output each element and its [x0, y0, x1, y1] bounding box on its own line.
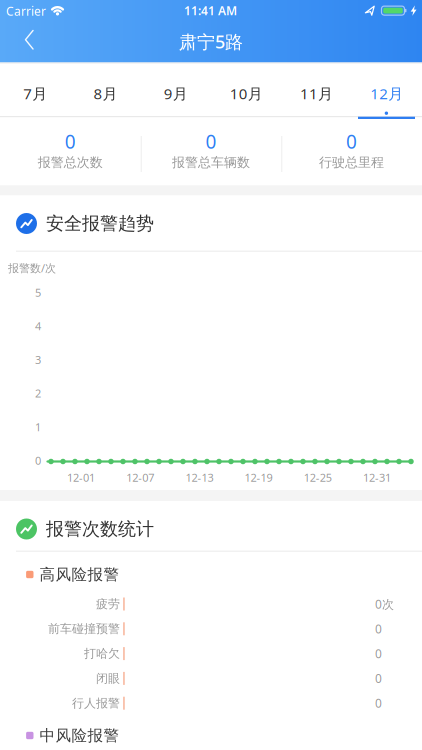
staticText: 报警总次数: [38, 154, 103, 171]
staticText: 行人报警: [72, 696, 120, 711]
staticText: 12-31: [363, 470, 391, 485]
staticText: 1: [35, 419, 41, 434]
button[interactable]: 12月: [352, 68, 422, 118]
staticText: 12-25: [304, 470, 332, 485]
staticText: 中风险报警: [39, 726, 119, 745]
staticText: 报警数/次: [8, 260, 56, 275]
staticText: 4: [35, 319, 41, 334]
staticText: 0: [205, 128, 216, 154]
staticText: 0: [65, 128, 76, 154]
staticText: 12-13: [185, 470, 213, 485]
staticText: 报警次数统计: [46, 518, 154, 540]
staticText: 肃宁5路: [179, 29, 243, 54]
staticText: 9月: [164, 83, 188, 104]
button[interactable]: 8月: [70, 68, 141, 118]
staticText: 0: [375, 695, 382, 711]
staticText: 0: [346, 128, 357, 154]
staticText: 5: [35, 285, 41, 300]
staticText: 10月: [230, 83, 263, 104]
staticText: 0次: [375, 596, 394, 612]
staticText: 12-01: [67, 470, 95, 485]
staticText: 0: [375, 645, 382, 662]
staticText: 高风险报警: [39, 565, 119, 584]
staticText: 11月: [300, 83, 333, 104]
staticText: 8月: [93, 83, 117, 104]
button[interactable]: 10月: [211, 68, 281, 118]
staticText: 闭眼: [96, 671, 120, 686]
staticText: 7月: [23, 83, 47, 104]
staticText: 12-07: [126, 470, 154, 485]
staticText: 前车碰撞预警: [48, 621, 120, 636]
button[interactable]: 11月: [281, 68, 352, 118]
button[interactable]: 7月: [0, 68, 70, 118]
staticText: 2: [35, 386, 41, 401]
button[interactable]: 9月: [141, 68, 211, 118]
button[interactable]: Back: [15, 23, 59, 55]
staticText: 11:41 AM: [184, 2, 237, 19]
staticText: 12月: [370, 83, 403, 104]
staticText: Carrier: [6, 3, 46, 19]
staticText: 12-19: [245, 470, 273, 485]
staticText: 打哈欠: [84, 646, 120, 661]
staticText: 0: [375, 621, 382, 637]
staticText: 行驶总里程: [319, 154, 384, 171]
staticText: 疲劳: [96, 596, 120, 611]
staticText: 3: [35, 352, 41, 367]
staticText: 0: [35, 453, 41, 468]
staticText: 0: [375, 670, 382, 686]
staticText: 安全报警趋势: [46, 212, 154, 235]
staticText: 报警总车辆数: [172, 154, 250, 171]
